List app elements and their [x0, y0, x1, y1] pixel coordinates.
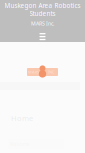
- staticText: INC: [48, 69, 55, 75]
- staticText: Students: [29, 10, 55, 18]
- staticText: MARS Inc.: [31, 20, 54, 27]
- button[interactable]: Menu: [36, 32, 48, 42]
- staticText: Muskegon Area Robotics: [4, 1, 80, 10]
- staticText: MARS: [28, 69, 39, 75]
- staticText: Home: [11, 113, 33, 123]
